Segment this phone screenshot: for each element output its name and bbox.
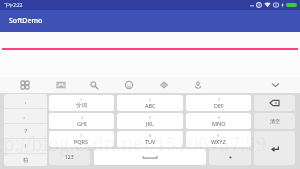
staticText: 下午2:22 — [4, 2, 23, 8]
button[interactable]: 7 — [49, 131, 114, 147]
staticText: SoftDemo — [9, 16, 43, 26]
button[interactable]: 4 — [49, 113, 114, 129]
staticText: 4 — [81, 115, 84, 120]
button[interactable]: ？ — [4, 124, 47, 138]
button[interactable]: 123 — [49, 149, 90, 165]
button[interactable]: 清空 — [254, 113, 295, 129]
staticText: 3 — [218, 97, 221, 102]
staticText: TUV — [145, 138, 156, 145]
button[interactable]: 符 — [4, 154, 47, 166]
staticText: 9 — [217, 133, 220, 138]
staticText: PQRS — [74, 138, 89, 145]
staticText: 符 — [23, 157, 29, 164]
staticText: 6 — [218, 115, 221, 120]
staticText: MNO — [212, 120, 226, 127]
button[interactable]: Voice input — [183, 77, 213, 93]
button[interactable]: Enter — [254, 131, 295, 165]
button[interactable]: ！ — [4, 139, 47, 153]
staticText: WXYZ — [211, 138, 226, 145]
button[interactable]: Symbols — [10, 77, 40, 93]
staticText: 7 — [80, 133, 83, 138]
button[interactable]: 5 — [117, 113, 183, 129]
staticText: ！ — [23, 143, 29, 150]
button[interactable]: Keyboard layout — [46, 77, 76, 93]
button[interactable]: 3 — [186, 95, 251, 111]
staticText: 8 — [149, 133, 152, 138]
button[interactable]: Hide keyboard — [261, 77, 289, 93]
button[interactable]: Emoji — [114, 77, 144, 93]
staticText: 。 — [23, 113, 29, 120]
staticText: 123 — [65, 154, 74, 161]
staticText: 清空 — [270, 118, 280, 124]
staticText: 5 — [149, 115, 152, 120]
staticText: GHI — [77, 120, 87, 127]
button[interactable]: 6 — [186, 113, 251, 129]
button[interactable]: 2 — [117, 95, 183, 111]
button[interactable]: 1 — [49, 95, 114, 111]
button[interactable]: 8 — [117, 131, 183, 147]
button[interactable]: Search — [79, 77, 109, 93]
staticText: JKL — [146, 120, 154, 127]
staticText: 1 — [80, 97, 83, 102]
button[interactable]: ， — [4, 94, 47, 108]
staticText: 2 — [149, 97, 152, 102]
staticText: ， — [23, 98, 29, 105]
staticText: DEF — [214, 102, 224, 109]
button[interactable]: 9 — [186, 131, 251, 147]
staticText: 分词 — [76, 102, 87, 109]
button[interactable] — [209, 149, 251, 165]
button[interactable]: Move keyboard — [149, 77, 179, 93]
button[interactable]: Space — [94, 149, 206, 165]
button[interactable]: Backspace — [254, 95, 295, 111]
staticText: ？ — [23, 128, 29, 135]
staticText: ABC — [145, 102, 156, 109]
staticText: tp://blog.csdn.net/15106757.59 — [0, 131, 267, 157]
